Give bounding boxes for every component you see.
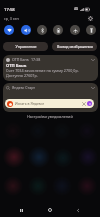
staticText: ОТП Банк — [12, 57, 29, 62]
staticText: ср, 3 сен — [4, 16, 19, 21]
button[interactable]: ОТП Банк — [3, 55, 98, 81]
button[interactable]: Voice search — [87, 101, 92, 106]
staticText: Управление — [15, 44, 37, 49]
staticText: Искать в Яндексе — [15, 101, 45, 106]
staticText: Счет 7034 зачисление на сумму 2700,0р. Д… — [6, 68, 95, 78]
button[interactable]: Bluetooth — [37, 25, 47, 35]
staticText: Настройки уведомлений — [27, 114, 73, 119]
button[interactable]: Recents — [14, 203, 28, 217]
button[interactable]: Airplane mode — [70, 25, 80, 35]
button[interactable]: Expand — [90, 85, 96, 91]
button[interactable]: Back — [71, 203, 85, 217]
staticText: 17:38 — [31, 57, 41, 62]
button[interactable]: Settings — [86, 14, 94, 22]
staticText: Яндекс Старт — [12, 85, 35, 90]
staticText: 17:58 — [4, 7, 15, 13]
button[interactable]: Image search — [82, 102, 86, 106]
button[interactable]: Управление — [3, 42, 48, 51]
button[interactable]: Expand — [90, 57, 96, 63]
button[interactable]: Battery saver — [53, 25, 63, 35]
button[interactable]: Яндекс Старт — [3, 83, 98, 112]
staticText: ОТП Банк — [6, 63, 27, 69]
staticText: 4G — [74, 7, 79, 11]
button[interactable]: Настройки уведомлений — [0, 112, 100, 120]
button[interactable]: Wi-Fi — [4, 25, 14, 35]
button[interactable]: Искать в Яндексе — [5, 99, 94, 108]
button[interactable]: Flashlight — [86, 25, 96, 35]
button[interactable]: Home — [43, 203, 57, 217]
button[interactable]: Вывод изображения — [52, 42, 97, 51]
staticText: Вывод изображения — [57, 44, 93, 49]
button[interactable]: Sound — [21, 25, 31, 35]
